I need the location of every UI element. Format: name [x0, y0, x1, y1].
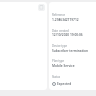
- staticText: 1-2946342719712: [52, 18, 79, 22]
- staticText: Mobile Service: [52, 64, 75, 68]
- staticText: Expected: [57, 82, 72, 86]
- staticText: 12/10/2020 19:00:06: [52, 33, 83, 37]
- button[interactable]: Copy reference: [38, 4, 45, 11]
- button[interactable]: Expected: [52, 82, 72, 86]
- staticText: Device type: [52, 44, 68, 48]
- staticText: Plan type: [52, 59, 65, 63]
- staticText: Status: [52, 75, 61, 79]
- staticText: Date created: [52, 29, 69, 33]
- staticText: Reference: [52, 13, 66, 17]
- staticText: Subscriber termination: [52, 49, 88, 53]
